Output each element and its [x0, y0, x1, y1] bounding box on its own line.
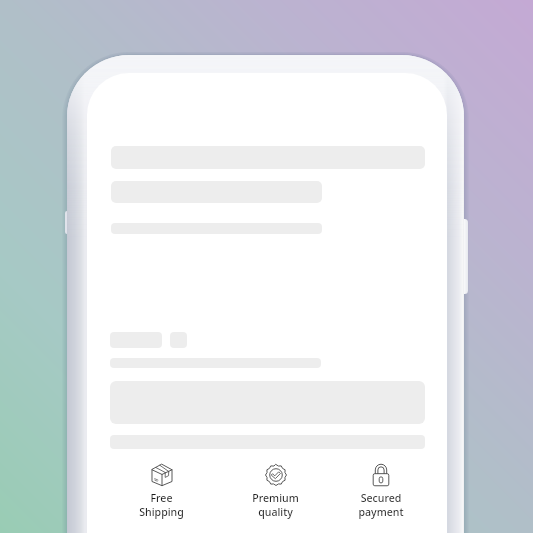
staticText: Free Shipping — [139, 491, 184, 519]
button[interactable]: Secured payment — [333, 464, 429, 526]
staticText: Premium quality — [252, 491, 299, 519]
button[interactable]: Premium quality — [227, 464, 323, 526]
staticText: Secured payment — [358, 491, 404, 519]
button[interactable]: Free Shipping — [113, 464, 209, 526]
